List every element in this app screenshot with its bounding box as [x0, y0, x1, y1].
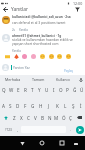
staticText: ?123: [5, 128, 12, 132]
button[interactable]: N: [46, 112, 53, 123]
button[interactable]: Shift: [0, 112, 11, 123]
button[interactable]: B: [39, 112, 46, 123]
button[interactable]: Ç: [67, 112, 74, 123]
staticText: Z: [13, 115, 16, 121]
button[interactable]: Emoji: [13, 53, 19, 59]
button[interactable]: Tamam: [26, 75, 51, 84]
button[interactable]: G: [29, 100, 37, 111]
staticText: W: [9, 87, 14, 93]
button[interactable]: I: [50, 84, 57, 95]
staticText: D: [16, 103, 20, 109]
button[interactable]: Ğ: [71, 84, 78, 95]
staticText: ,: [17, 127, 19, 132]
staticText: U: [45, 87, 49, 93]
button[interactable]: Ş: [69, 100, 77, 111]
button[interactable]: Filter: [73, 5, 82, 14]
button[interactable]: E: [15, 84, 22, 95]
button[interactable]: ,: [15, 124, 20, 135]
button[interactable]: İ: [77, 100, 85, 111]
staticText: can defend et al 3 positions tweet: [12, 20, 66, 25]
staticText: Ü: [80, 87, 84, 93]
button[interactable]: P: [64, 84, 71, 95]
button[interactable]: J: [45, 100, 53, 111]
button[interactable]: O: [57, 84, 64, 95]
button[interactable]: T: [29, 84, 36, 95]
button[interactable]: Paylaş: [64, 69, 73, 73]
button[interactable]: M: [53, 112, 60, 123]
staticText: O: [59, 87, 63, 93]
button[interactable]: A: [0, 100, 7, 111]
button[interactable]: L: [61, 100, 69, 111]
staticText: G: [31, 103, 35, 109]
staticText: 2s: [12, 28, 15, 32]
button[interactable]: Backspace: [74, 112, 85, 123]
button[interactable]: V: [32, 112, 39, 123]
button[interactable]: Voice input: [76, 75, 85, 84]
staticText: I: [53, 87, 55, 93]
button[interactable]: W: [8, 84, 15, 95]
staticText: Ö: [62, 115, 66, 121]
staticText: N: [48, 115, 52, 121]
staticText: L: [64, 103, 67, 109]
button[interactable]: X: [18, 112, 25, 123]
staticText: B: [41, 115, 44, 121]
button[interactable]: ?123: [1, 124, 15, 135]
staticText: Merhaba: [5, 77, 21, 82]
button[interactable]: Back: [1, 5, 10, 14]
button[interactable]: Merhaba: [0, 75, 26, 84]
button[interactable]: Emoji: [21, 53, 27, 59]
staticText: sözlük ve kullanımdan hazırdan etkilik v…: [12, 38, 83, 46]
staticText: Tamam: [32, 77, 45, 82]
staticText: T: [31, 87, 34, 93]
button[interactable]: Recents: [57, 138, 67, 148]
button[interactable]: Emoji: [39, 53, 45, 59]
button[interactable]: Ö: [60, 112, 67, 123]
staticText: Paylaş: [64, 69, 73, 73]
button[interactable]: S: [7, 100, 14, 111]
button[interactable]: D: [14, 100, 21, 111]
staticText: kullaniciadi @kullanici_adi_uzun · 2sa: [12, 15, 71, 19]
staticText: H: [39, 103, 43, 109]
staticText: 12:00: [73, 1, 83, 6]
button[interactable]: Q: [0, 84, 8, 95]
staticText: İ: [80, 103, 82, 109]
staticText: A: [2, 103, 5, 109]
staticText: E: [17, 87, 20, 93]
staticText: Y: [38, 87, 41, 93]
button[interactable]: R: [22, 84, 29, 95]
button[interactable]: Back: [17, 138, 27, 148]
button[interactable]: Z: [11, 112, 18, 123]
staticText: Ğ: [73, 87, 77, 93]
button[interactable]: Home: [37, 138, 47, 148]
button[interactable]: Y: [36, 84, 43, 95]
staticText: Yanıtlar: [11, 6, 29, 13]
button[interactable]: Emoji: [65, 53, 71, 59]
button[interactable]: Kullanıcı: [51, 75, 76, 84]
staticText: J: [48, 103, 50, 109]
button[interactable]: F: [21, 100, 29, 111]
button[interactable]: Send: [76, 126, 84, 134]
staticText: M: [54, 115, 59, 121]
staticText: Yanıtla: [12, 49, 21, 53]
staticText: R: [24, 87, 27, 93]
button[interactable]: K: [53, 100, 61, 111]
button[interactable]: Emoji: [4, 53, 10, 59]
staticText: Yanıtla: [19, 28, 28, 32]
staticText: Q: [2, 87, 6, 93]
button[interactable]: C: [25, 112, 32, 123]
button[interactable]: Emoji: [48, 53, 54, 59]
button[interactable]: H: [37, 100, 45, 111]
staticText: S: [9, 103, 12, 109]
button[interactable]: Ü: [78, 84, 85, 95]
button[interactable]: Hide keyboard: [71, 139, 80, 148]
staticText: V: [34, 115, 37, 121]
button[interactable]: Emoji: [30, 53, 36, 59]
button[interactable]: U: [43, 84, 50, 95]
staticText: Ş: [72, 103, 75, 109]
staticText: P: [66, 87, 69, 93]
staticText: ahmet51 @ahmet_kullanici · 1g: [12, 34, 62, 38]
button[interactable]: Emoji: [56, 53, 62, 59]
staticText: Yanıtını Yaz: [13, 66, 30, 70]
